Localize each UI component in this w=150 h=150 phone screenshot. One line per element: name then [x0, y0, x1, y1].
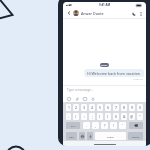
button[interactable]: !	[110, 122, 117, 129]
staticText: 0	[139, 105, 141, 110]
staticText: .	[86, 123, 87, 128]
staticText: 5	[99, 105, 101, 110]
staticText: !	[113, 123, 114, 128]
staticText: "	[139, 114, 141, 119]
button[interactable]: 6	[105, 104, 111, 111]
staticText: Today	[101, 64, 108, 67]
button[interactable]: Photo	[82, 96, 87, 101]
button[interactable]: )	[105, 113, 111, 120]
staticText: :	[84, 114, 85, 119]
button[interactable]: $	[113, 113, 119, 120]
staticText: )	[107, 114, 109, 119]
staticText: -	[68, 114, 70, 119]
button[interactable]: Emoji	[66, 96, 71, 101]
staticText: '	[122, 123, 123, 128]
button[interactable]: (	[97, 113, 103, 120]
button[interactable]: 3	[81, 104, 87, 111]
staticText: 3	[83, 105, 85, 110]
button[interactable]: .	[83, 122, 90, 129]
button[interactable]: ?	[101, 122, 108, 129]
staticText: @	[130, 114, 134, 119]
staticText: 8	[123, 105, 125, 110]
staticText: #+=	[71, 124, 76, 127]
staticText: 1	[68, 105, 70, 110]
button[interactable]: 0	[137, 104, 143, 111]
button[interactable]: 2	[73, 104, 79, 111]
staticText: 7	[115, 105, 117, 110]
button[interactable]: /	[73, 113, 79, 120]
staticText: 2	[75, 105, 77, 110]
staticText: ABC	[69, 135, 74, 138]
button[interactable]: &	[121, 113, 127, 120]
button[interactable]: -	[66, 113, 71, 120]
button[interactable]: :	[81, 113, 87, 120]
button[interactable]: 1	[66, 104, 71, 111]
staticText: 10:20 AM	[133, 78, 144, 81]
button[interactable]: 8	[121, 104, 127, 111]
button[interactable]: Voice message	[90, 96, 95, 101]
button[interactable]: Backspace	[129, 122, 143, 129]
button[interactable]: #+=	[66, 122, 80, 129]
staticText: Hi Welcome back from vacation	[87, 71, 141, 76]
staticText: 4	[91, 105, 93, 110]
staticText: Type a message...	[67, 88, 94, 92]
button[interactable]: ,	[92, 122, 99, 129]
staticText: $	[115, 114, 117, 119]
button[interactable]: 9	[129, 104, 135, 111]
button[interactable]: "	[137, 113, 143, 120]
button[interactable]: Voice input	[87, 132, 93, 140]
button[interactable]: ABC	[66, 132, 77, 140]
button[interactable]: Back	[66, 10, 72, 16]
button[interactable]: More options	[138, 11, 143, 16]
button[interactable]: Emoji keyboard	[79, 132, 85, 140]
staticText: ;	[92, 114, 93, 119]
button[interactable]: Call	[130, 10, 137, 17]
staticText: ?	[104, 123, 106, 128]
staticText: return	[132, 135, 140, 138]
button[interactable]: space	[95, 132, 126, 140]
button[interactable]: @	[129, 113, 135, 120]
staticText: (	[99, 114, 101, 119]
button[interactable]: Attach file	[74, 96, 79, 101]
staticText: Anwar Dunte	[81, 11, 104, 16]
staticText: /	[75, 114, 77, 119]
button[interactable]: return	[128, 132, 143, 140]
button[interactable]: ;	[89, 113, 95, 120]
staticText: 9	[131, 105, 133, 110]
staticText: &	[123, 114, 126, 119]
button[interactable]: '	[119, 122, 126, 129]
staticText: 6	[107, 105, 109, 110]
staticText: ,	[95, 123, 96, 128]
staticText: 9:41 AM	[99, 3, 111, 7]
staticText: space	[107, 135, 114, 138]
button[interactable]: 7	[113, 104, 119, 111]
button[interactable]: 5	[97, 104, 103, 111]
button[interactable]: 4	[89, 104, 95, 111]
